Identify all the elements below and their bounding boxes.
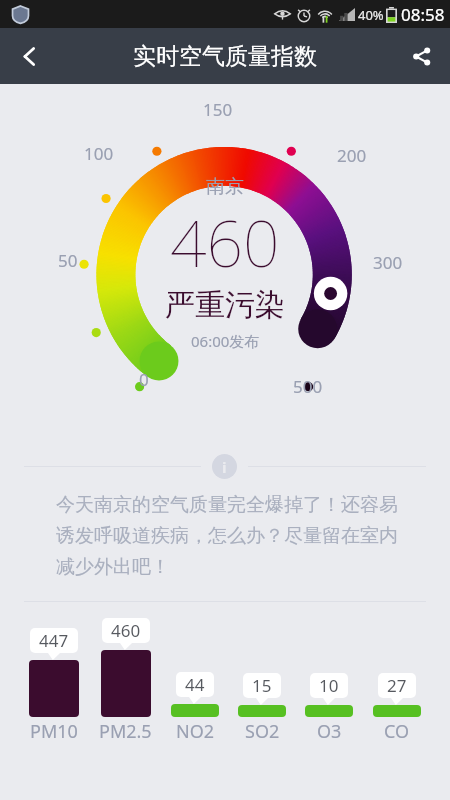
staticText: i: [222, 457, 227, 477]
staticText: SO2: [245, 719, 280, 744]
staticText: PM2.5: [99, 719, 152, 744]
button[interactable]: 27: [373, 618, 421, 744]
staticText: 150: [203, 98, 233, 121]
button[interactable]: 15: [238, 618, 286, 744]
staticText: O3: [317, 719, 342, 744]
staticText: 100: [84, 142, 114, 165]
button[interactable]: 460: [99, 618, 152, 744]
staticText: 44: [185, 673, 205, 696]
staticText: 460: [111, 619, 141, 642]
staticText: 200: [337, 144, 367, 167]
staticText: 300: [373, 251, 403, 274]
button[interactable]: Share: [392, 28, 450, 84]
staticText: 447: [39, 629, 69, 652]
staticText: CO: [384, 719, 410, 744]
staticText: 08:58: [401, 3, 445, 26]
button[interactable]: Back: [0, 28, 58, 84]
staticText: 40%: [358, 6, 384, 24]
staticText: 460: [170, 199, 280, 286]
staticText: NO2: [176, 719, 215, 744]
button[interactable]: 447: [29, 618, 79, 744]
staticText: 实时空气质量指数: [133, 42, 317, 71]
staticText: 10: [319, 674, 339, 697]
staticText: 50: [58, 249, 78, 272]
staticText: PM10: [30, 719, 78, 744]
staticText: 500: [293, 375, 323, 398]
staticText: 严重污染: [165, 286, 285, 324]
button[interactable]: 10: [305, 618, 353, 744]
staticText: 今天南京的空气质量完全爆掉了！还容易诱发呼吸道疾病，怎么办？尽量留在室内减少外出…: [56, 493, 398, 579]
button[interactable]: 44: [171, 618, 219, 744]
staticText: 0: [139, 368, 149, 391]
staticText: 06:00发布: [191, 331, 260, 351]
staticText: 15: [252, 674, 272, 697]
staticText: 27: [387, 674, 407, 697]
staticText: 南京: [206, 175, 244, 199]
